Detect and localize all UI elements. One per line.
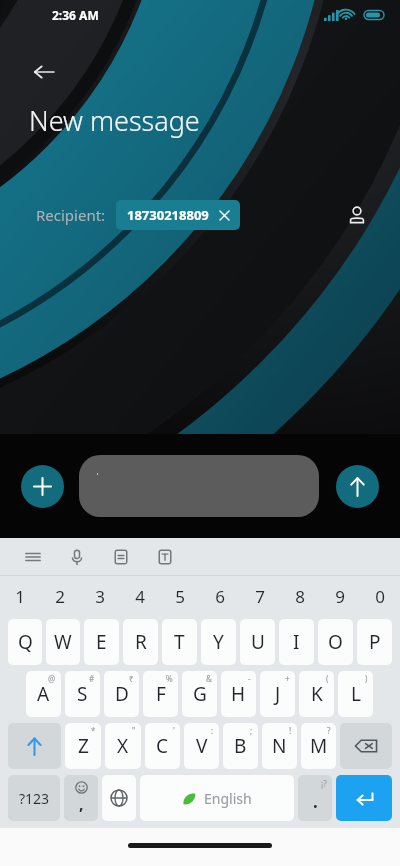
staticText: - [248,673,251,684]
button[interactable]: ?123 [8,775,60,821]
staticText: . [313,790,318,813]
staticText: R [135,629,147,655]
button[interactable]: M [301,723,336,769]
staticText: % [166,673,173,684]
staticText: 1 [15,585,25,608]
staticText: Q [18,629,33,655]
staticText: English [204,789,252,808]
staticText: V [196,733,208,759]
staticText: C [156,733,169,759]
button[interactable] [79,455,319,517]
staticText: X [117,733,129,759]
button[interactable]: 6 [200,576,240,616]
button[interactable]: W [46,619,80,665]
button[interactable]: Emoji and comma [64,775,98,821]
button[interactable]: 1 [0,576,40,616]
button[interactable]: E [84,619,119,665]
staticText: ₹ [129,673,134,684]
staticText: , [79,793,84,815]
button[interactable]: 7 [240,576,280,616]
button[interactable]: F [143,671,178,717]
button[interactable]: Z [65,723,101,769]
button[interactable]: Y [201,619,236,665]
button[interactable]: Voice input [64,544,90,570]
button[interactable]: B [223,723,258,769]
staticText: 4 [135,585,145,608]
staticText: + [285,673,290,684]
button[interactable]: X [105,723,141,769]
button[interactable]: 9 [320,576,360,616]
button[interactable]: A [26,671,61,717]
button[interactable]: U [240,619,275,665]
button[interactable]: C [145,723,180,769]
button[interactable]: 5 [160,576,200,616]
button[interactable]: Change language [102,775,136,821]
staticText: W [54,629,72,655]
staticText: Y [213,629,224,655]
button[interactable]: Q [8,619,42,665]
staticText: F [156,681,166,707]
button[interactable]: 8 [280,576,320,616]
button[interactable]: 18730218809 [116,200,240,230]
button[interactable]: Back [22,50,66,94]
staticText: J [275,681,281,707]
staticText: 7 [255,585,265,608]
staticText: 6 [215,585,225,608]
staticText: 0 [375,585,385,608]
button[interactable]: English [140,775,294,821]
staticText: H [231,681,246,707]
button[interactable]: S [65,671,100,717]
button[interactable]: Enter [336,775,392,821]
button[interactable]: Text options [152,544,178,570]
staticText: ; [250,725,253,736]
staticText: S [77,681,88,707]
button[interactable]: D [104,671,139,717]
button[interactable]: O [318,619,353,665]
button[interactable]: H [221,671,256,717]
button[interactable]: R [123,619,158,665]
staticText: N [272,733,287,759]
staticText: U [251,629,265,655]
staticText: A [37,681,50,707]
button[interactable]: 2 [40,576,80,616]
button[interactable]: J [260,671,295,717]
button[interactable]: Pick contact [340,198,374,232]
staticText: # [89,673,95,684]
button[interactable]: N [262,723,297,769]
staticText: ?123 [19,789,50,808]
staticText: Z [78,733,89,759]
button[interactable]: G [182,671,217,717]
staticText: I [293,629,300,655]
staticText: New message [29,102,200,139]
staticText: K [311,681,323,707]
button[interactable]: Add attachment [21,465,64,508]
button[interactable]: Menu [20,544,46,570]
staticText: G [193,681,207,707]
staticText: 5 [175,585,185,608]
staticText: ¡? [321,778,327,789]
button[interactable]: T [162,619,197,665]
staticText: ) [365,673,368,684]
staticText: B [234,733,247,759]
button[interactable]: Shift [8,723,61,769]
staticText: 3 [95,585,105,608]
button[interactable]: 4 [120,576,160,616]
staticText: ( [326,673,329,684]
button[interactable]: 3 [80,576,120,616]
button[interactable]: Send [336,465,379,508]
staticText: : [211,725,214,736]
staticText: O [328,629,343,655]
button[interactable]: K [299,671,334,717]
button[interactable]: Period [298,775,332,821]
button[interactable]: Clipboard [108,544,134,570]
button[interactable]: Backspace [340,723,392,769]
button[interactable]: I [279,619,314,665]
staticText: @ [48,673,56,684]
button[interactable]: L [338,671,373,717]
button[interactable]: P [357,619,392,665]
staticText: P [369,629,381,655]
button[interactable]: V [184,723,219,769]
staticText: & [206,673,212,684]
staticText: E [96,629,107,655]
button[interactable]: 0 [360,576,400,616]
